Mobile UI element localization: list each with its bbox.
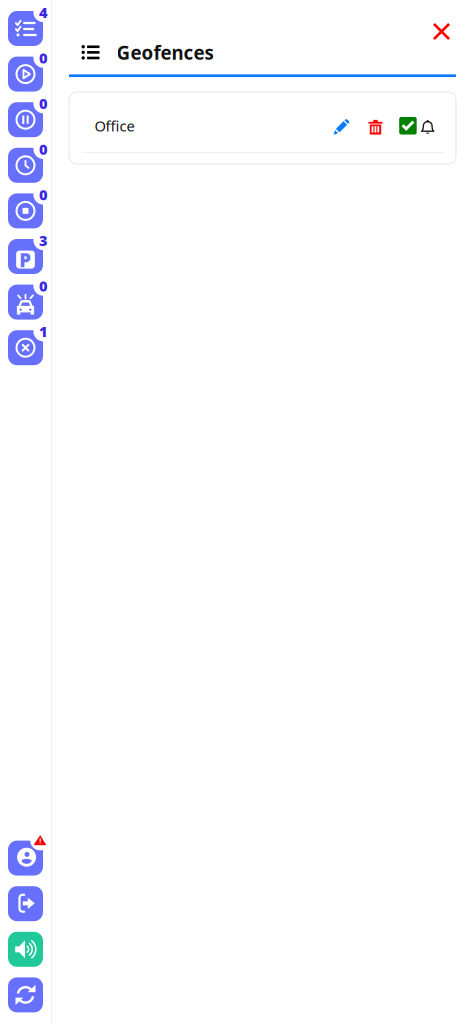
- button[interactable]: Parked: [0, 228, 51, 274]
- button[interactable]: Paused: [0, 91, 51, 137]
- button[interactable]: Stopped: [0, 182, 51, 228]
- button[interactable]: Account: [0, 830, 51, 875]
- button[interactable]: Sign out: [0, 875, 51, 921]
- button[interactable]: Vehicles: [0, 274, 51, 319]
- button[interactable]: Cancelled: [0, 319, 51, 365]
- button[interactable]: Trips: [0, 46, 51, 91]
- button[interactable]: Delete geofence: [362, 113, 389, 141]
- staticText: 0: [39, 139, 48, 159]
- button[interactable]: Sound: [0, 921, 51, 966]
- staticText: 0: [39, 276, 48, 296]
- staticText: 3: [39, 230, 48, 250]
- staticText: P: [19, 247, 31, 272]
- staticText: 0: [39, 185, 48, 204]
- button[interactable]: Edit geofence: [327, 113, 355, 141]
- button[interactable]: Notifications: [415, 113, 441, 140]
- staticText: 4: [39, 2, 48, 22]
- staticText: Office: [95, 116, 135, 135]
- button[interactable]: Scheduled: [0, 137, 51, 182]
- staticText: 0: [39, 94, 48, 113]
- staticText: 1: [39, 322, 48, 341]
- staticText: Geofences: [116, 40, 213, 65]
- button[interactable]: Geofence active: [393, 111, 423, 140]
- button[interactable]: Tasks: [0, 0, 51, 46]
- staticText: 0: [39, 48, 48, 68]
- button[interactable]: Refresh: [0, 966, 51, 1012]
- button[interactable]: Close: [425, 15, 458, 48]
